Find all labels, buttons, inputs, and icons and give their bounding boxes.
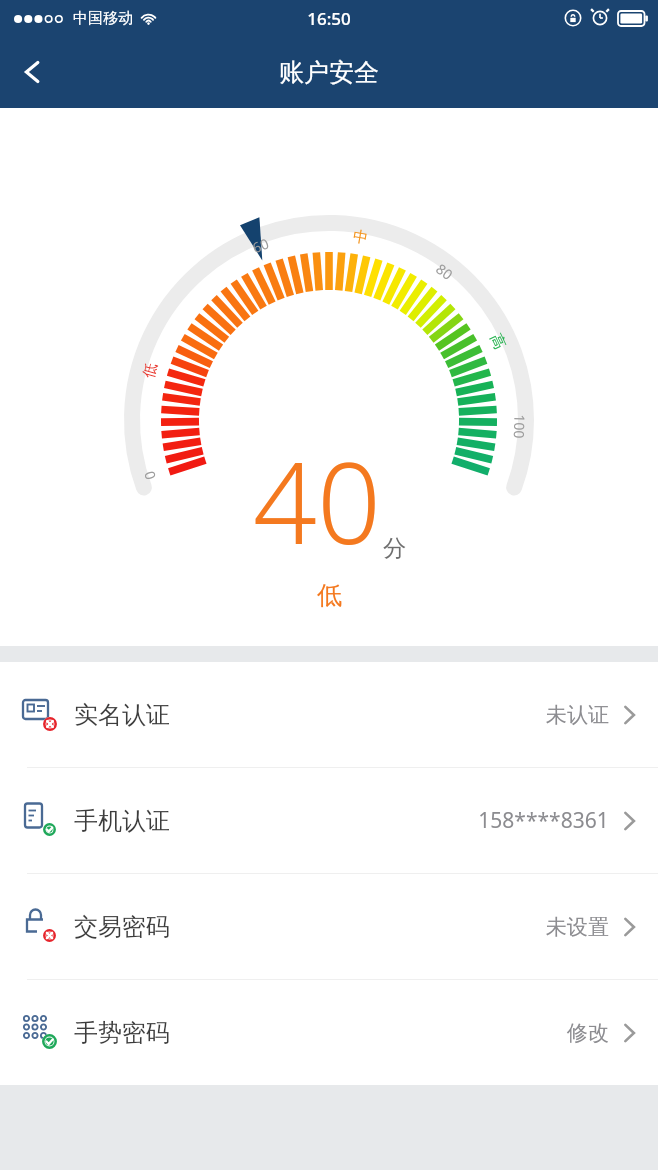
staticText: 手机认证 bbox=[74, 806, 170, 836]
staticText: 账户安全 bbox=[279, 57, 379, 88]
staticText: 分 bbox=[383, 534, 406, 563]
staticText: 0 bbox=[139, 468, 160, 482]
staticText: 交易密码 bbox=[74, 912, 170, 942]
button[interactable]: 实名认证 bbox=[0, 662, 658, 767]
staticText: 低 bbox=[317, 580, 342, 611]
staticText: 修改 bbox=[567, 1020, 609, 1046]
staticText: 60 bbox=[249, 233, 272, 257]
staticText: 高 bbox=[486, 331, 509, 352]
staticText: 158****8361 bbox=[478, 806, 609, 835]
staticText: 未设置 bbox=[546, 914, 609, 940]
staticText: 中 bbox=[351, 227, 369, 248]
staticText: 实名认证 bbox=[74, 700, 170, 730]
staticText: 未认证 bbox=[546, 702, 609, 728]
button[interactable]: Back bbox=[6, 45, 60, 99]
staticText: 低 bbox=[139, 361, 162, 380]
button[interactable]: 手势密码 bbox=[0, 980, 658, 1085]
staticText: 80 bbox=[432, 259, 457, 284]
staticText: 16:50 bbox=[307, 7, 351, 30]
staticText: 40 bbox=[253, 424, 381, 577]
button[interactable]: 交易密码 bbox=[0, 874, 658, 979]
staticText: 中国移动 bbox=[73, 9, 133, 28]
button[interactable]: 手机认证 bbox=[0, 768, 658, 873]
staticText: 100 bbox=[510, 414, 529, 439]
staticText: 手势密码 bbox=[74, 1018, 170, 1048]
